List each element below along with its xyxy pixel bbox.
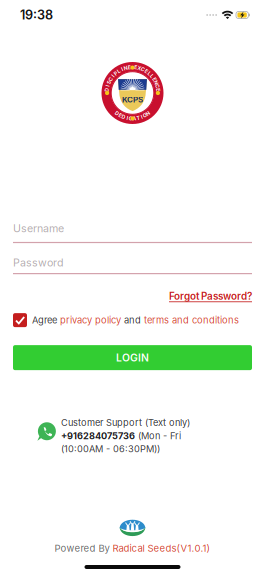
staticText: E: [119, 112, 122, 119]
staticText: C: [155, 83, 159, 89]
staticText: privacy policy: [60, 314, 121, 326]
staticText: Forgot Password?: [169, 290, 252, 302]
staticText: Radical Seeds(V1.0.1): [112, 542, 210, 554]
staticText: I: [122, 66, 123, 73]
staticText: Agree: [32, 314, 60, 326]
staticText: L: [150, 73, 153, 79]
staticText: Customer Support (Text only): [61, 417, 190, 428]
staticText: (Mon - Fri: [135, 430, 181, 441]
staticText: T: [136, 115, 139, 121]
staticText: D: [115, 110, 119, 117]
staticText: Password: [13, 256, 64, 269]
staticText: and: [121, 314, 144, 326]
staticText: I: [112, 73, 113, 79]
staticText: E: [134, 64, 137, 70]
staticText: O: [143, 112, 147, 119]
staticText: N: [154, 79, 158, 86]
staticText: L: [117, 68, 120, 74]
staticText: (10:00AM - 06:30PM)): [61, 443, 160, 454]
staticText: 19:38: [20, 7, 53, 23]
button[interactable]: Forgot Password?: [169, 290, 252, 302]
staticText: KCPS: [122, 95, 143, 104]
staticText: I: [126, 115, 127, 121]
button[interactable]: LOGIN: [13, 345, 252, 370]
staticText: C: [129, 115, 133, 122]
staticText: Powered By: [54, 542, 112, 554]
staticText: N: [124, 65, 128, 71]
staticText: E: [145, 68, 148, 74]
staticText: D: [105, 87, 109, 93]
button[interactable]: Agree to privacy policy and terms: [13, 313, 27, 327]
staticText: +916284075736: [61, 430, 135, 441]
staticText: C: [141, 66, 145, 73]
staticText: Username: [13, 222, 64, 235]
staticText: I: [141, 114, 142, 120]
staticText: S: [107, 79, 110, 86]
staticText: N: [146, 110, 150, 117]
staticText: D: [121, 114, 125, 120]
staticText: C: [109, 76, 113, 82]
staticText: I: [107, 83, 108, 89]
staticText: L: [148, 70, 151, 77]
staticText: terms and conditions: [144, 314, 239, 326]
staticText: E: [157, 87, 160, 93]
staticText: A: [132, 115, 136, 122]
staticText: P: [114, 70, 117, 77]
staticText: LOGIN: [116, 351, 149, 364]
staticText: E: [128, 64, 131, 70]
staticText: E: [153, 76, 156, 82]
staticText: X: [137, 65, 141, 71]
